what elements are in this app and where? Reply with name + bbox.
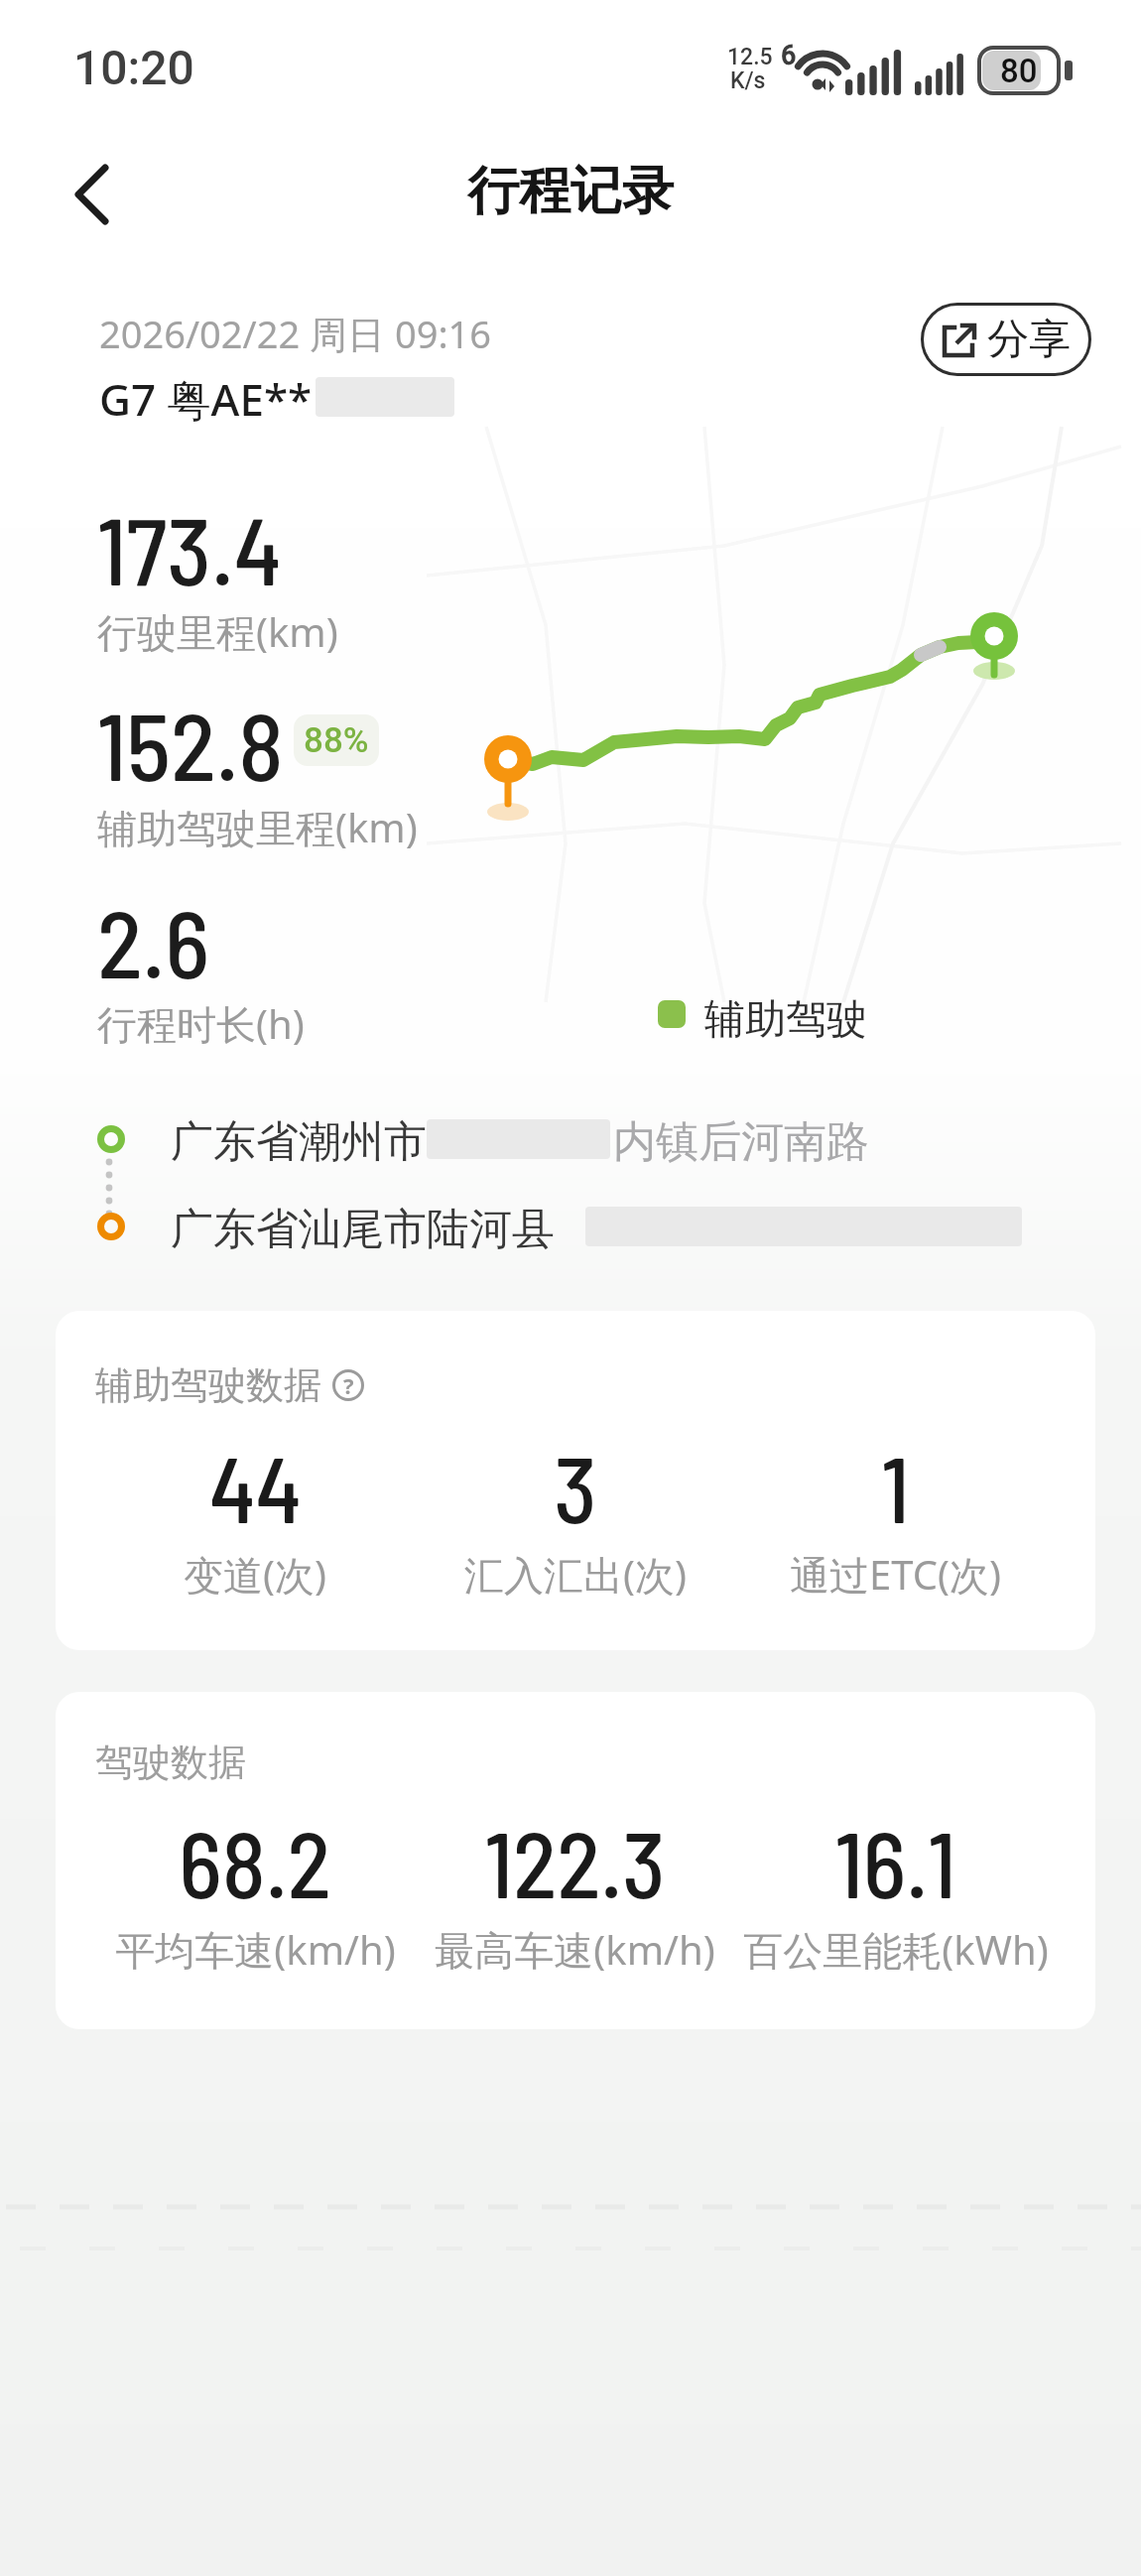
staticText: 44 — [209, 1432, 302, 1541]
staticText: 辅助驾驶里程(km) — [97, 800, 418, 854]
staticText: 80 — [1000, 52, 1038, 90]
staticText: 6 — [781, 40, 797, 71]
button[interactable]: ? — [331, 1368, 365, 1402]
staticText: 辅助驾驶 — [704, 994, 867, 1046]
staticText: 10:20 — [73, 40, 194, 95]
staticText: 平均车速(km/h) — [115, 1922, 396, 1977]
staticText: 68.2 — [179, 1807, 331, 1916]
staticText: 12.5 — [727, 44, 773, 70]
staticText: 最高车速(km/h) — [435, 1922, 715, 1977]
staticText: 88% — [304, 720, 369, 761]
staticText: 广东省汕尾市陆河县 — [171, 1203, 555, 1256]
staticText: 汇入汇出(次) — [464, 1547, 687, 1602]
button[interactable] — [58, 154, 137, 237]
staticText: 分享 — [987, 314, 1071, 366]
staticText: G7 粤AE** — [99, 369, 313, 429]
staticText: 变道(次) — [184, 1547, 326, 1602]
staticText: 2026/02/22 周日 09:16 — [99, 308, 492, 359]
staticText: 3 — [554, 1432, 597, 1541]
staticText: 1 — [881, 1432, 910, 1541]
staticText: 行程时长(h) — [97, 996, 305, 1051]
staticText: ? — [343, 1370, 354, 1400]
staticText: 百公里能耗(kWh) — [743, 1922, 1049, 1977]
staticText: 16.1 — [834, 1807, 956, 1916]
staticText: 行程记录 — [467, 159, 674, 224]
staticText: 内镇后河南路 — [613, 1115, 869, 1169]
staticText: 辅助驾驶数据 — [95, 1361, 321, 1409]
staticText: 通过ETC(次) — [790, 1547, 1001, 1602]
staticText: 152.8 — [97, 687, 284, 800]
button[interactable]: 分享 — [921, 303, 1091, 376]
staticText: K/s — [730, 67, 766, 94]
staticText: 122.3 — [484, 1807, 666, 1916]
staticText: 173.4 — [97, 491, 282, 604]
staticText: 广东省潮州市 — [171, 1115, 427, 1169]
staticText: 2.6 — [97, 884, 210, 997]
staticText: 行驶里程(km) — [97, 604, 338, 659]
staticText: 驾驶数据 — [95, 1739, 246, 1786]
